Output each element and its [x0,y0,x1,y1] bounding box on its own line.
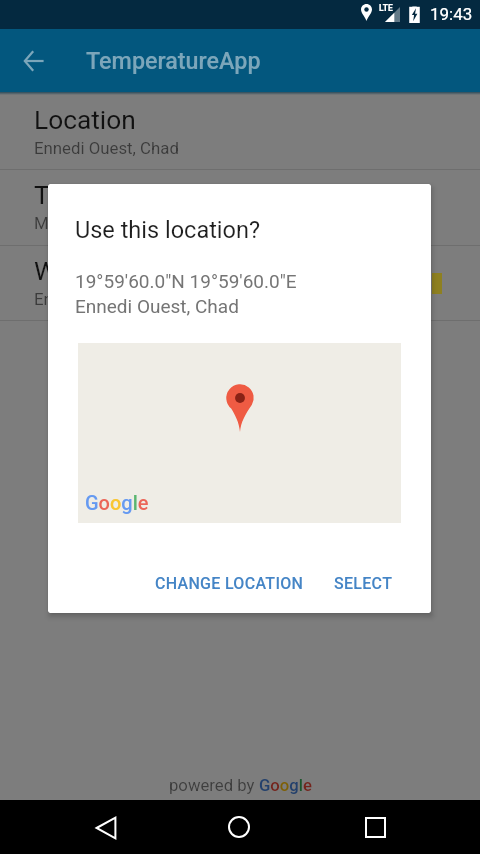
button[interactable]: Temperature [0,170,480,245]
staticText: powered by [169,776,259,796]
button[interactable]: Weather [0,246,480,320]
staticText: Ennedi Ouest, Chad [75,295,239,317]
staticText: Location [34,105,136,136]
button[interactable]: Location [0,95,480,169]
staticText: Temperature [34,180,183,211]
staticText: Use this location? [75,216,261,244]
staticText: TemperatureApp [86,47,261,74]
staticText: 19°59'60.0"N 19°59'60.0"E [75,270,297,292]
button[interactable]: Home [215,803,263,851]
staticText: Metric (°C) [34,213,115,233]
staticText: Google [85,491,149,514]
staticText: Enabled [34,289,94,309]
staticText: Weather [34,256,132,287]
staticText: 19:43 [430,4,473,24]
button[interactable]: Back [82,804,130,852]
staticText: SELECT [334,574,393,593]
button[interactable]: Back [0,29,67,92]
button[interactable]: Recents [351,803,399,851]
staticText: Ennedi Ouest, Chad [34,138,179,158]
button[interactable]: CHANGE LOCATION [147,562,312,605]
staticText: LTE [379,3,393,13]
staticText: Google [259,776,312,796]
staticText: CHANGE LOCATION [155,574,304,593]
button[interactable]: SELECT [326,562,401,605]
